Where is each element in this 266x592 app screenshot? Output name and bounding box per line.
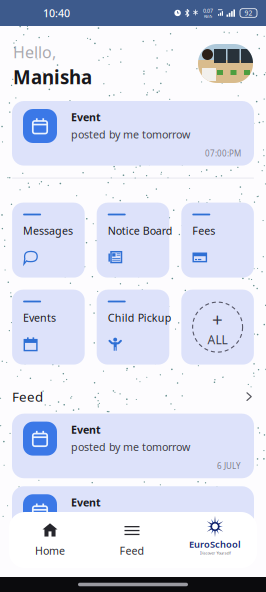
button[interactable]: Feed bbox=[91, 512, 173, 568]
staticText: posted by me tomorrow bbox=[71, 440, 190, 454]
staticText: Events bbox=[23, 310, 56, 325]
staticText: Event bbox=[71, 110, 101, 124]
staticText: 6 JULY bbox=[217, 533, 241, 544]
button[interactable]: Event bbox=[12, 486, 254, 551]
button[interactable]: Event bbox=[12, 414, 254, 478]
button[interactable]: Notice Board bbox=[97, 203, 169, 278]
staticText: ALL bbox=[208, 332, 228, 347]
staticText: 10:40 bbox=[43, 6, 70, 20]
button[interactable]: Fees bbox=[181, 203, 254, 278]
button[interactable]: Home bbox=[9, 512, 91, 568]
staticText: 92 bbox=[244, 9, 252, 17]
staticText: Manisha bbox=[13, 65, 92, 89]
staticText: KB/S bbox=[204, 14, 212, 19]
button[interactable]: + bbox=[181, 290, 254, 365]
button[interactable]: EuroSchool bbox=[173, 512, 257, 568]
staticText: Notice Board bbox=[108, 223, 173, 238]
button[interactable]: Events bbox=[12, 290, 85, 365]
staticText: 6 JULY bbox=[217, 461, 241, 471]
staticText: posted by me tomorrow bbox=[71, 127, 190, 141]
staticText: Messages bbox=[23, 223, 73, 238]
staticText: Feed bbox=[12, 388, 43, 405]
staticText: Hello, bbox=[13, 41, 56, 63]
staticText: + bbox=[212, 307, 223, 332]
button[interactable]: Profile bbox=[198, 44, 253, 83]
staticText: Feed bbox=[119, 543, 144, 558]
button[interactable]: Messages bbox=[12, 203, 85, 278]
button[interactable]: Child Pickup bbox=[97, 290, 169, 365]
button[interactable]: Event bbox=[12, 101, 254, 166]
staticText: Event bbox=[71, 423, 101, 437]
staticText: Home bbox=[35, 543, 65, 558]
button[interactable]: Feed bbox=[12, 390, 254, 404]
staticText: 0.07 bbox=[203, 7, 213, 14]
staticText: posted by me tomorrow bbox=[71, 512, 190, 527]
staticText: Discover Yourself bbox=[199, 550, 230, 556]
staticText: Event bbox=[71, 495, 101, 509]
staticText: Child Pickup bbox=[108, 310, 172, 325]
staticText: 07:00:PM bbox=[205, 148, 241, 159]
staticText: Fees bbox=[192, 223, 215, 238]
staticText: EuroSchool bbox=[189, 538, 241, 550]
